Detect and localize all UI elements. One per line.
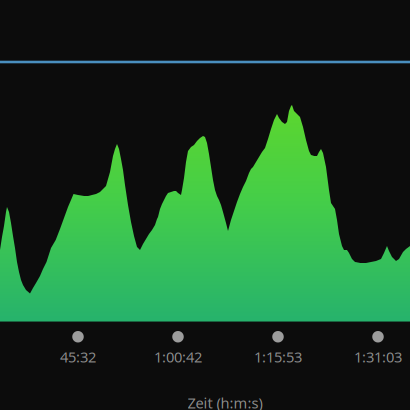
staticText: 1:31:03 <box>354 347 402 366</box>
staticText: 1:15:53 <box>254 347 302 366</box>
staticText: Zeit (h:m:s) <box>187 393 262 410</box>
staticText: 1:00:42 <box>154 347 202 366</box>
staticText: 45:32 <box>60 347 96 366</box>
